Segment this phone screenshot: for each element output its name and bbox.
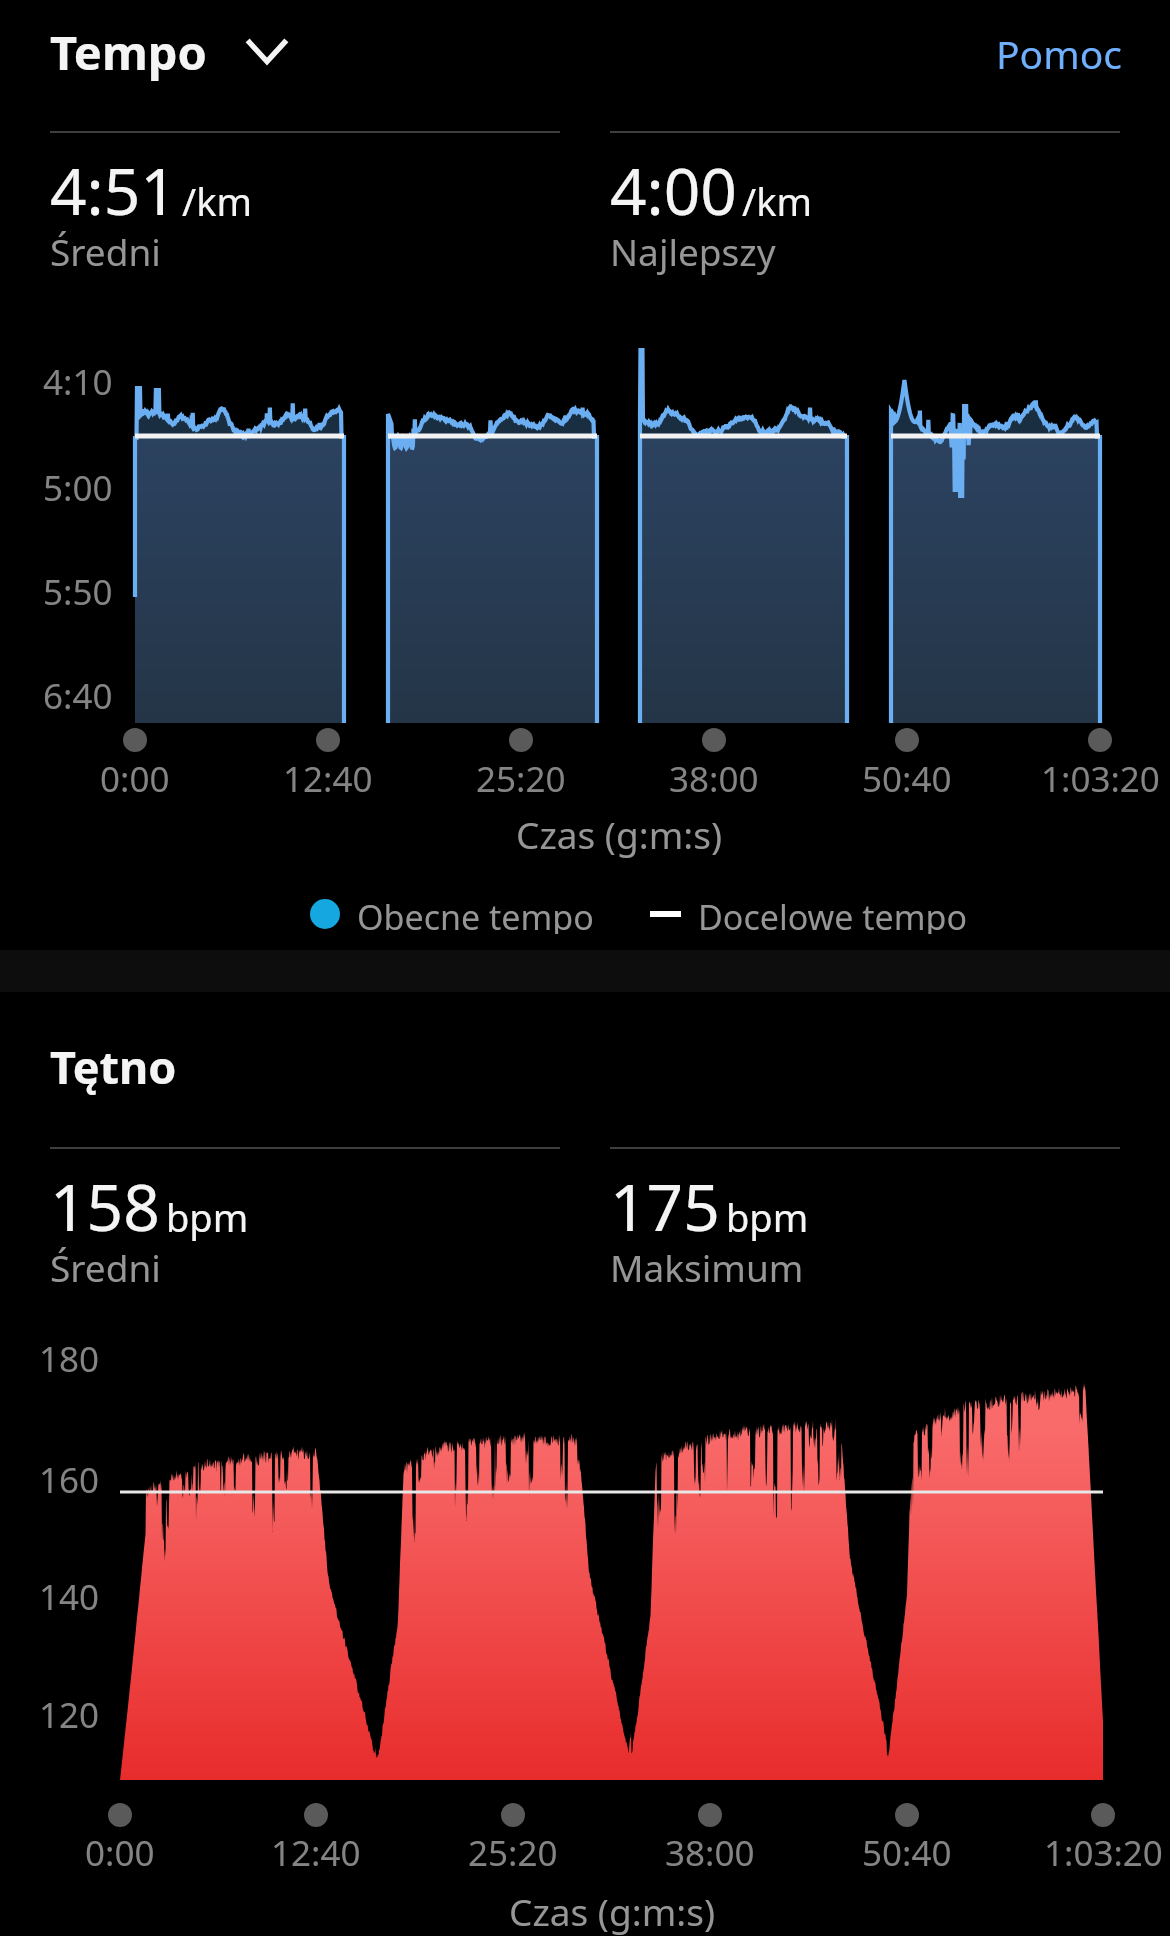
staticText: 4:10 — [43, 358, 113, 406]
staticText: Tempo — [50, 20, 207, 84]
staticText: 175 — [610, 1163, 720, 1250]
staticText: 120 — [39, 1691, 100, 1739]
staticText: 1:03:20 — [1041, 755, 1160, 803]
staticText: 4:51 — [50, 147, 177, 234]
staticText: 0:00 — [85, 1829, 155, 1877]
staticText: 38:00 — [665, 1829, 755, 1877]
button[interactable]: Obecne tempo — [310, 894, 594, 934]
staticText: 25:20 — [468, 1829, 558, 1877]
staticText: 158 — [50, 1163, 160, 1250]
staticText: bpm — [166, 1191, 249, 1243]
staticText: 160 — [39, 1456, 100, 1504]
staticText: /km — [742, 175, 812, 227]
staticText: Maksimum — [610, 1242, 804, 1292]
button[interactable]: Pomoc — [996, 27, 1122, 80]
staticText: 50:40 — [862, 1829, 952, 1877]
staticText: Najlepszy — [610, 226, 776, 276]
staticText: Docelowe tempo — [698, 894, 968, 934]
button[interactable]: 175 — [610, 1147, 1120, 1300]
staticText: 180 — [39, 1335, 100, 1383]
button[interactable]: 4:51 — [50, 131, 560, 284]
staticText: 0:00 — [100, 755, 170, 803]
button[interactable]: 4:00 — [610, 131, 1120, 284]
staticText: /km — [182, 175, 252, 227]
staticText: 12:40 — [283, 755, 373, 803]
staticText: 50:40 — [862, 755, 952, 803]
staticText: Czas (g:m:s) — [509, 1886, 715, 1936]
staticText: 5:50 — [43, 568, 113, 616]
staticText: Średni — [50, 1242, 161, 1292]
staticText: 6:40 — [43, 672, 113, 720]
staticText: Pomoc — [996, 27, 1122, 80]
staticText: 4:00 — [610, 147, 737, 234]
staticText: 12:40 — [271, 1829, 361, 1877]
staticText: Tętno — [50, 1036, 177, 1097]
staticText: 5:00 — [43, 464, 113, 512]
staticText: Średni — [50, 226, 161, 276]
staticText: Czas (g:m:s) — [516, 809, 722, 859]
button[interactable]: 158 — [50, 1147, 560, 1300]
staticText: bpm — [726, 1191, 809, 1243]
staticText: 38:00 — [669, 755, 759, 803]
staticText: 1:03:20 — [1044, 1829, 1163, 1877]
staticText: Obecne tempo — [357, 894, 594, 934]
staticText: 140 — [39, 1573, 100, 1621]
staticText: 25:20 — [476, 755, 566, 803]
button[interactable]: Docelowe tempo — [650, 894, 968, 934]
button[interactable]: Tempo — [50, 20, 287, 84]
